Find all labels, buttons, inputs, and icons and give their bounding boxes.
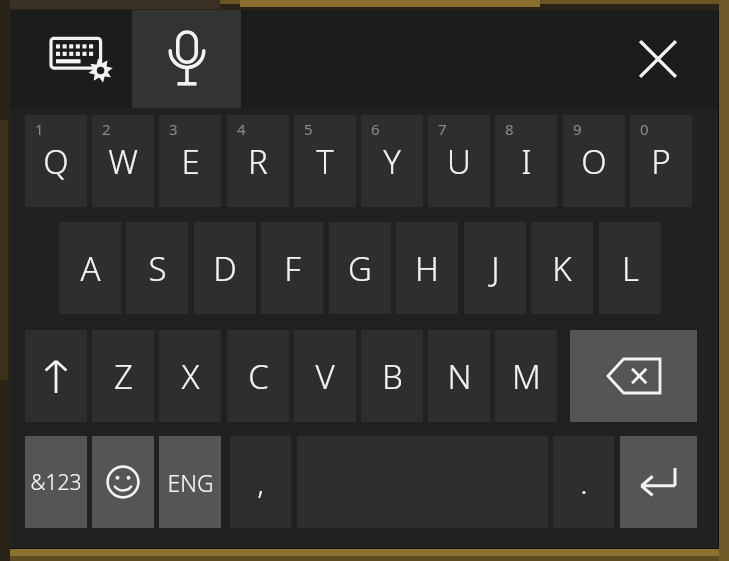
staticText: 1 [35, 119, 44, 139]
button[interactable]: D [194, 222, 256, 314]
button[interactable]: Close keyboard [620, 22, 696, 96]
button[interactable]: Voice input [132, 10, 241, 108]
button[interactable]: V [294, 330, 356, 422]
button[interactable]: M [495, 330, 557, 422]
staticText: S [148, 246, 167, 291]
button[interactable]: T [294, 115, 356, 207]
staticText: &123 [30, 468, 82, 497]
staticText: K [552, 246, 572, 291]
button[interactable]: H [396, 222, 458, 314]
button[interactable]: L [599, 222, 661, 314]
button[interactable]: ENG [159, 436, 221, 528]
staticText: V [315, 354, 335, 399]
staticText: , [257, 462, 264, 503]
staticText: Z [114, 354, 133, 399]
button[interactable]: K [531, 222, 593, 314]
button[interactable]: S [126, 222, 188, 314]
staticText: . [580, 462, 588, 503]
button[interactable]: Z [92, 330, 154, 422]
staticText: R [248, 139, 268, 184]
staticText: E [181, 139, 200, 184]
button[interactable]: I [495, 115, 557, 207]
button[interactable]: U [428, 115, 490, 207]
staticText: 2 [102, 119, 111, 139]
staticText: L [622, 246, 639, 291]
staticText: ENG [167, 467, 214, 498]
button[interactable]: E [159, 115, 221, 207]
staticText: 4 [237, 119, 246, 139]
button[interactable]: Backspace [570, 330, 697, 422]
button[interactable]: Emoji [92, 436, 154, 528]
staticText: B [382, 354, 403, 399]
button[interactable]: . [553, 436, 614, 528]
staticText: U [447, 139, 471, 184]
staticText: W [108, 139, 138, 184]
staticText: Q [43, 139, 69, 184]
button[interactable]: &123 [25, 436, 87, 528]
staticText: 8 [505, 119, 514, 139]
button[interactable]: Keyboard settings [32, 10, 132, 108]
staticText: T [316, 139, 334, 184]
button[interactable]: Y [361, 115, 423, 207]
button[interactable]: W [92, 115, 154, 207]
staticText: 9 [573, 119, 582, 139]
button[interactable]: Shift [25, 330, 87, 422]
staticText: M [512, 354, 541, 399]
button[interactable]: P [630, 115, 692, 207]
staticText: F [284, 246, 301, 291]
staticText: G [348, 246, 372, 291]
button[interactable]: C [227, 330, 289, 422]
staticText: 6 [371, 119, 380, 139]
button[interactable]: J [464, 222, 526, 314]
staticText: P [651, 139, 671, 184]
button[interactable]: X [159, 330, 221, 422]
staticText: 5 [304, 119, 313, 139]
button[interactable]: B [361, 330, 423, 422]
button[interactable]: G [329, 222, 391, 314]
staticText: 0 [640, 119, 649, 139]
button[interactable]: O [563, 115, 625, 207]
staticText: H [415, 246, 439, 291]
staticText: O [581, 139, 607, 184]
button[interactable]: Enter [620, 436, 697, 528]
button[interactable]: R [227, 115, 289, 207]
button[interactable]: Q [25, 115, 87, 207]
button[interactable]: A [59, 222, 121, 314]
staticText: X [181, 354, 200, 399]
button[interactable]: N [428, 330, 490, 422]
staticText: Y [383, 139, 401, 184]
button[interactable]: , [230, 436, 291, 528]
staticText: 3 [169, 119, 178, 139]
staticText: D [213, 246, 237, 291]
staticText: A [80, 246, 101, 291]
staticText: I [521, 139, 532, 184]
staticText: C [248, 354, 269, 399]
staticText: N [447, 354, 472, 399]
staticText: 7 [438, 119, 447, 139]
staticText: J [491, 246, 500, 291]
button[interactable]: F [261, 222, 323, 314]
